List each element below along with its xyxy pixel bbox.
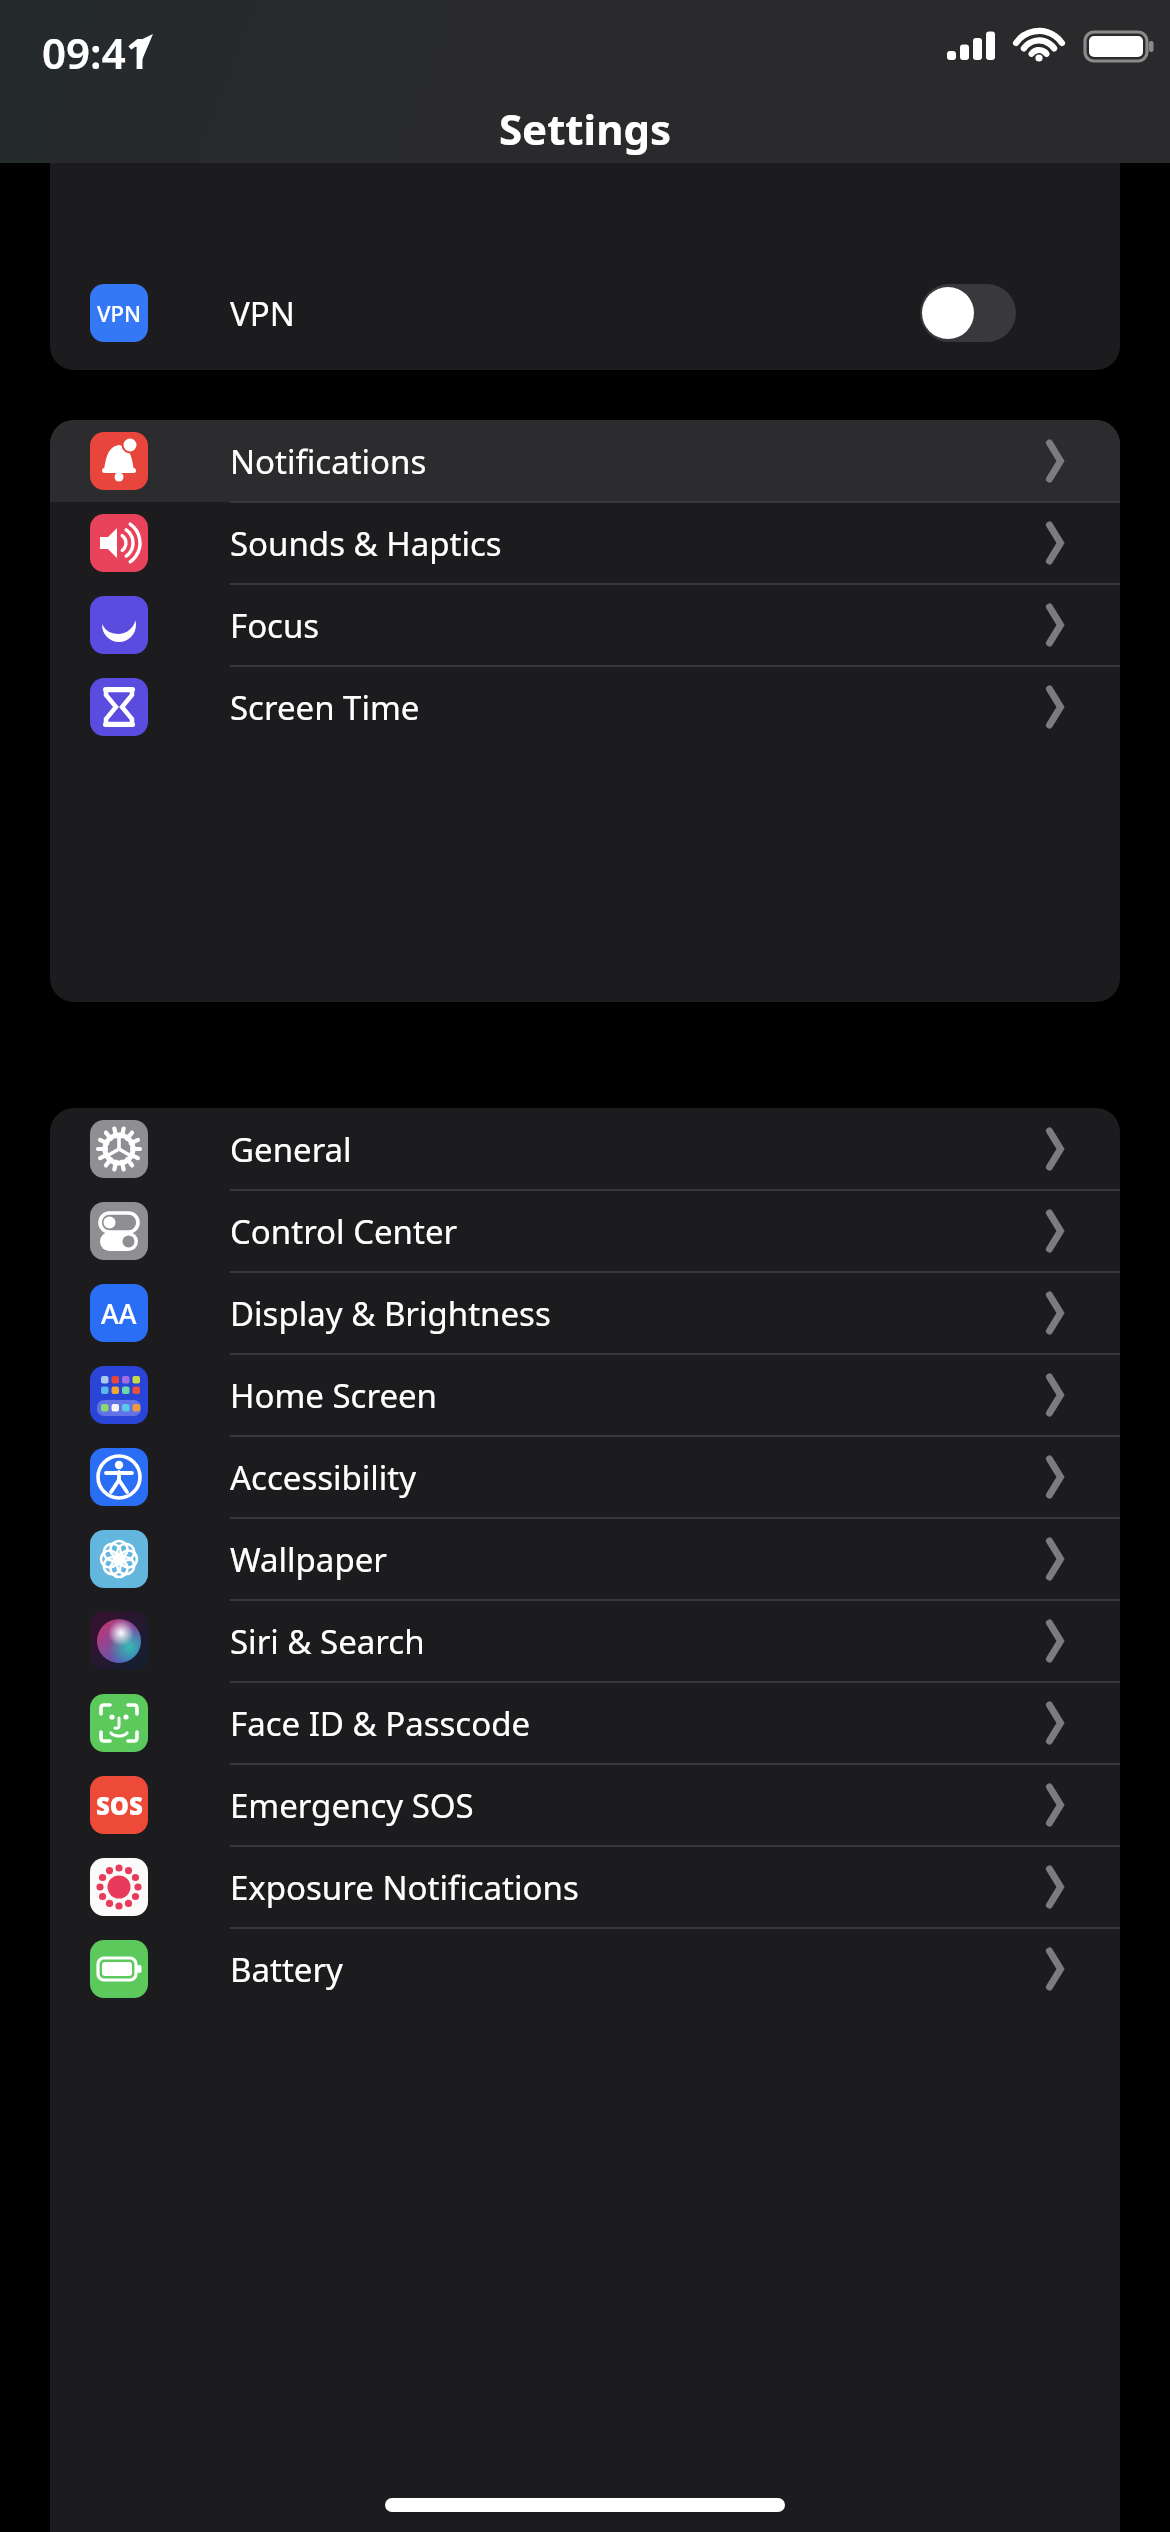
staticText: VPN: [230, 291, 295, 336]
staticText: Accessibility: [230, 1455, 417, 1500]
staticText: Home Screen: [230, 1373, 438, 1418]
staticText: AA: [101, 1295, 137, 1332]
staticText: Settings: [0, 100, 1170, 157]
staticText: Wallpaper: [230, 1537, 387, 1582]
staticText: 09:41: [42, 24, 150, 81]
staticText: Control Center: [230, 1209, 458, 1254]
staticText: Face ID & Passcode: [230, 1701, 531, 1746]
button[interactable]: Notifications: [50, 420, 1120, 502]
button[interactable]: Siri & Search: [50, 1600, 1120, 1682]
button[interactable]: General: [50, 1108, 1120, 1190]
staticText: Sounds & Haptics: [230, 521, 502, 566]
button[interactable]: Home Screen: [50, 1354, 1120, 1436]
staticText: Siri & Search: [230, 1619, 425, 1664]
staticText: General: [230, 1127, 352, 1172]
staticText: SOS: [96, 1789, 143, 1822]
button[interactable]: Accessibility: [50, 1436, 1120, 1518]
button[interactable]: Display & Brightness: [50, 1272, 1120, 1354]
staticText: Display & Brightness: [230, 1291, 551, 1336]
button[interactable]: Face ID & Passcode: [50, 1682, 1120, 1764]
button[interactable]: VPN: [50, 272, 1120, 354]
button[interactable]: Control Center: [50, 1190, 1120, 1272]
staticText: Exposure Notifications: [230, 1865, 579, 1910]
button[interactable]: Exposure Notifications: [50, 1846, 1120, 1928]
staticText: Screen Time: [230, 685, 420, 730]
staticText: Notifications: [230, 439, 427, 484]
button[interactable]: Wallpaper: [50, 1518, 1120, 1600]
staticText: Battery: [230, 1947, 343, 1992]
staticText: Emergency SOS: [230, 1783, 474, 1828]
button[interactable]: Focus: [50, 584, 1120, 666]
button[interactable]: Sounds & Haptics: [50, 502, 1120, 584]
staticText: Focus: [230, 603, 320, 648]
button[interactable]: Emergency SOS: [50, 1764, 1120, 1846]
staticText: VPN: [97, 298, 142, 328]
button[interactable]: Battery: [50, 1928, 1120, 2010]
button[interactable]: Screen Time: [50, 666, 1120, 748]
